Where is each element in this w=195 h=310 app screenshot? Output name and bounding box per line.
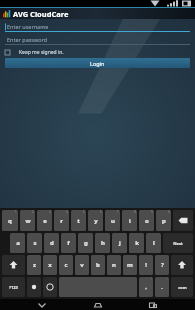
button[interactable]: j bbox=[112, 233, 127, 253]
staticText: ? bbox=[161, 261, 164, 269]
staticText: l bbox=[153, 239, 155, 247]
button[interactable]: z bbox=[27, 255, 41, 275]
staticText: 4 bbox=[66, 210, 68, 214]
button[interactable]: Shift bbox=[171, 255, 193, 275]
button[interactable]: t bbox=[71, 210, 86, 231]
staticText: 6 bbox=[100, 210, 102, 214]
staticText: v bbox=[80, 261, 84, 269]
staticText: Login bbox=[90, 60, 105, 67]
button[interactable]: p bbox=[156, 210, 171, 231]
button[interactable]: r bbox=[54, 210, 69, 231]
staticText: h bbox=[101, 239, 105, 247]
button[interactable]: Settings bbox=[27, 277, 41, 297]
staticText: b bbox=[96, 261, 100, 269]
button[interactable]: ?123 bbox=[2, 277, 25, 297]
button[interactable]: Shift bbox=[2, 255, 25, 275]
button[interactable]: h bbox=[95, 233, 110, 253]
button[interactable]: a bbox=[10, 233, 25, 253]
button[interactable]: Enter username bbox=[5, 21, 190, 32]
staticText: com bbox=[178, 285, 187, 290]
staticText: f bbox=[67, 239, 70, 247]
staticText: AVG CloudCare bbox=[13, 9, 69, 19]
button[interactable]: i bbox=[122, 210, 137, 231]
button[interactable]: x bbox=[43, 255, 57, 275]
button[interactable]: . bbox=[155, 277, 169, 297]
button[interactable]: q bbox=[2, 210, 18, 231]
button[interactable]: n bbox=[107, 255, 121, 275]
button[interactable]: m bbox=[123, 255, 137, 275]
button[interactable]: e bbox=[37, 210, 52, 231]
button[interactable]: Delete bbox=[173, 210, 193, 231]
button[interactable]: ? bbox=[155, 255, 169, 275]
button[interactable]: com bbox=[171, 277, 193, 297]
button[interactable]: u bbox=[105, 210, 120, 231]
button[interactable]: , bbox=[139, 277, 153, 297]
staticText: 5 bbox=[83, 210, 85, 214]
staticText: . bbox=[161, 283, 163, 291]
staticText: e bbox=[43, 217, 47, 225]
staticText: m bbox=[127, 261, 133, 269]
staticText: , bbox=[145, 283, 147, 291]
staticText: Keep me signed in. bbox=[19, 49, 64, 56]
staticText: z bbox=[33, 261, 36, 269]
staticText: : bbox=[167, 277, 168, 281]
staticText: ! bbox=[151, 277, 152, 281]
staticText: 1 bbox=[15, 210, 17, 214]
staticText: ! bbox=[145, 261, 147, 269]
staticText: j bbox=[119, 239, 121, 247]
button[interactable]: Emoji bbox=[43, 277, 57, 297]
button[interactable]: ! bbox=[139, 255, 153, 275]
staticText: 7 bbox=[117, 210, 119, 214]
button[interactable]: b bbox=[91, 255, 105, 275]
staticText: x bbox=[48, 261, 52, 269]
staticText: n bbox=[112, 261, 116, 269]
staticText: g bbox=[84, 239, 88, 247]
button[interactable]: l bbox=[146, 233, 161, 253]
staticText: Next bbox=[173, 241, 183, 246]
staticText: a bbox=[16, 239, 20, 247]
staticText: r bbox=[60, 217, 63, 225]
button[interactable]: s bbox=[27, 233, 42, 253]
staticText: i bbox=[129, 217, 131, 225]
staticText: w bbox=[25, 217, 31, 225]
button[interactable]: c bbox=[59, 255, 73, 275]
staticText: u bbox=[111, 217, 115, 225]
staticText: k bbox=[135, 239, 139, 247]
button[interactable]: y bbox=[88, 210, 103, 231]
button[interactable]: Keep me signed in. bbox=[5, 47, 190, 57]
button[interactable]: v bbox=[75, 255, 89, 275]
staticText: 9 bbox=[151, 210, 153, 214]
button[interactable]: Home bbox=[85, 299, 111, 310]
staticText: 3 bbox=[49, 210, 51, 214]
button[interactable]: Next bbox=[163, 233, 193, 253]
button[interactable]: Enter password bbox=[5, 34, 190, 45]
staticText: ?123 bbox=[9, 285, 18, 290]
staticText: q bbox=[8, 217, 12, 225]
button[interactable]: Login bbox=[5, 58, 190, 68]
staticText: Enter password bbox=[7, 36, 48, 43]
staticText: o bbox=[145, 217, 149, 225]
staticText: y bbox=[94, 217, 98, 225]
staticText: Enter username bbox=[7, 23, 49, 30]
staticText: t bbox=[77, 217, 80, 225]
button[interactable]: d bbox=[44, 233, 59, 253]
staticText: s bbox=[33, 239, 37, 247]
button[interactable]: g bbox=[78, 233, 93, 253]
staticText: d bbox=[50, 239, 54, 247]
button[interactable]: Recent apps bbox=[140, 299, 166, 310]
staticText: p bbox=[162, 217, 166, 225]
staticText: 0 bbox=[168, 210, 170, 214]
staticText: c bbox=[64, 261, 68, 269]
button[interactable]: w bbox=[20, 210, 35, 231]
button[interactable]: Back bbox=[29, 299, 55, 310]
staticText: 8 bbox=[134, 210, 136, 214]
button[interactable]: o bbox=[139, 210, 154, 231]
button[interactable]: k bbox=[129, 233, 144, 253]
button[interactable]: f bbox=[61, 233, 76, 253]
staticText: 2 bbox=[32, 210, 34, 214]
